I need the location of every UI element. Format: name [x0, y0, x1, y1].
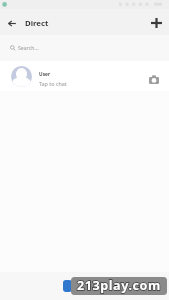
staticText: Tap to chat — [39, 80, 67, 87]
staticText: User — [39, 71, 51, 78]
button[interactable]: New message — [143, 9, 169, 35]
button[interactable]: Search... — [0, 35, 169, 61]
button[interactable]: User — [0, 61, 169, 91]
staticText: 213play.com — [77, 277, 161, 294]
button[interactable]: Camera — [140, 61, 168, 91]
staticText: Search... — [18, 44, 39, 51]
staticText: 213play.com — [77, 277, 161, 294]
staticText: Direct — [25, 18, 49, 29]
button[interactable]: Back — [3, 9, 20, 35]
